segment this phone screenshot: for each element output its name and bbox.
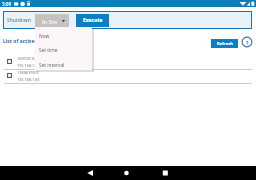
button[interactable]: Refresh (211, 39, 238, 48)
staticText: DESKTOP-R7VLQ2S (18, 57, 45, 61)
staticText: Set time (39, 47, 58, 54)
button[interactable]: Set interval (35, 56, 92, 70)
button[interactable]: Execute (76, 14, 109, 27)
button[interactable]: SURFACEPRO3 (0, 70, 256, 84)
staticText: In 5m (42, 18, 57, 25)
staticText: ? (246, 39, 249, 46)
staticText: 192.168.1.64 (17, 63, 40, 68)
button[interactable]: DESKTOP-R7VLQ2S (0, 56, 256, 70)
button[interactable]: Help (241, 36, 253, 48)
staticText: 3:09 (2, 1, 12, 7)
button[interactable]: Set time (35, 41, 92, 55)
staticText: Now (39, 33, 50, 40)
button[interactable]: Now (35, 27, 92, 41)
staticText: Execute (83, 17, 103, 24)
staticText: Set interval (39, 62, 65, 69)
staticText: Shutdown (7, 17, 31, 24)
staticText: Refresh (217, 41, 233, 47)
button[interactable]: In 5m (35, 14, 69, 27)
staticText: List of active devices (3, 38, 55, 45)
staticText: SURFACEPRO3 (18, 71, 39, 75)
staticText: 192.168.1.85 (17, 77, 40, 82)
